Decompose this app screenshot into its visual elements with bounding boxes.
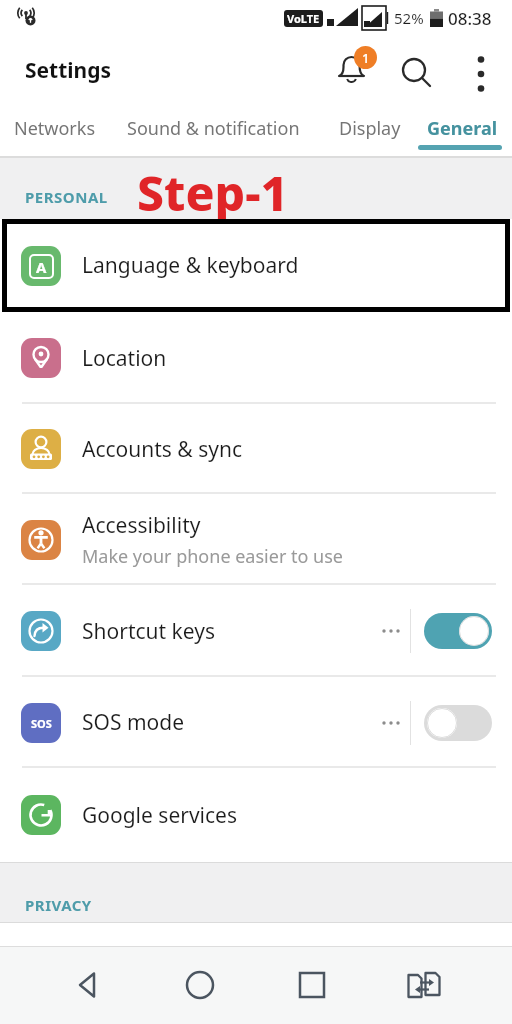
staticText: SOS: [31, 716, 52, 731]
button[interactable]: A: [2, 219, 510, 312]
button[interactable]: [398, 54, 438, 94]
staticText: 52%: [394, 8, 424, 28]
staticText: Accounts & sync: [82, 435, 242, 464]
staticText: VoLTE: [287, 11, 320, 26]
staticText: Step-1: [137, 160, 289, 221]
button[interactable]: Google services: [0, 768, 512, 862]
button[interactable]: General: [427, 116, 498, 141]
button[interactable]: [424, 613, 492, 649]
button[interactable]: [462, 54, 498, 94]
staticText: Shortcut keys: [82, 617, 215, 646]
staticText: Location: [82, 344, 167, 373]
button[interactable]: [66, 963, 110, 1007]
button[interactable]: SOS: [0, 677, 512, 768]
staticText: Language & keyboard: [82, 251, 299, 280]
button[interactable]: [178, 963, 222, 1007]
staticText: A: [36, 257, 47, 277]
staticText: 08:38: [448, 7, 492, 30]
staticText: Make your phone easier to use: [82, 544, 343, 569]
button[interactable]: Accounts & sync: [0, 404, 512, 494]
staticText: 1: [362, 49, 370, 67]
button[interactable]: Location: [0, 312, 512, 404]
staticText: Google services: [82, 801, 237, 830]
button[interactable]: [290, 963, 334, 1007]
button[interactable]: Networks: [14, 116, 96, 141]
staticText: PRIVACY: [25, 895, 92, 915]
staticText: SOS mode: [82, 708, 185, 737]
button[interactable]: Shortcut keys: [0, 585, 512, 677]
staticText: Accessibility: [82, 511, 201, 540]
button[interactable]: Display: [339, 116, 401, 141]
staticText: Settings: [25, 56, 112, 85]
button[interactable]: Sound & notification: [127, 116, 300, 141]
button[interactable]: [402, 963, 446, 1007]
staticText: PERSONAL: [25, 187, 108, 207]
button[interactable]: 1: [336, 46, 382, 94]
button[interactable]: Accessibility: [0, 494, 512, 585]
button[interactable]: [424, 705, 492, 741]
